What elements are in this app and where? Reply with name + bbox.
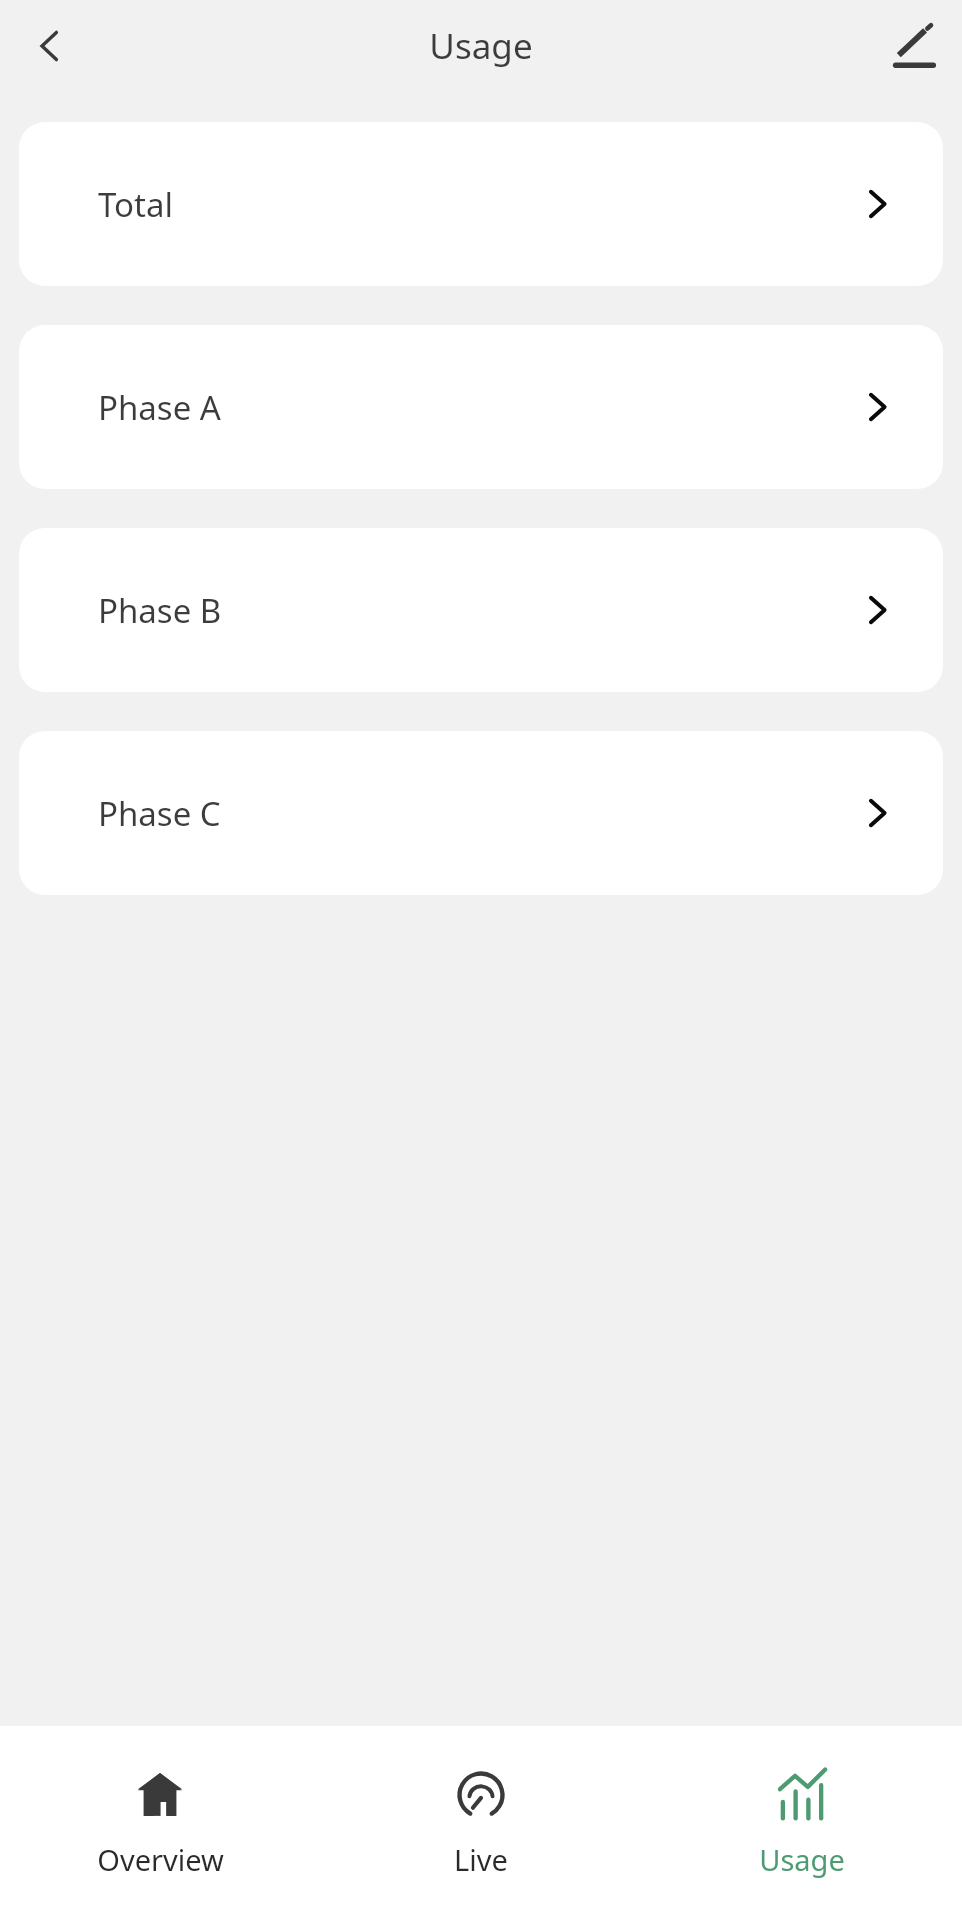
staticText: Overview (97, 1840, 224, 1879)
staticText: Usage (429, 22, 533, 70)
staticText: Total (98, 182, 173, 227)
button[interactable]: Phase C (19, 731, 943, 895)
staticText: Live (454, 1840, 508, 1879)
button[interactable]: Phase A (19, 325, 943, 489)
button[interactable]: Phase B (19, 528, 943, 692)
button[interactable]: Live (320, 1766, 641, 1920)
staticText: Phase C (98, 791, 221, 836)
staticText: Phase B (98, 588, 222, 633)
staticText: Phase A (98, 385, 221, 430)
button[interactable]: Edit (878, 10, 950, 82)
button[interactable]: Usage (641, 1766, 962, 1920)
staticText: Usage (759, 1840, 845, 1879)
button[interactable]: Total (19, 122, 943, 286)
button[interactable]: Overview (0, 1766, 320, 1920)
button[interactable]: Back (14, 10, 86, 82)
